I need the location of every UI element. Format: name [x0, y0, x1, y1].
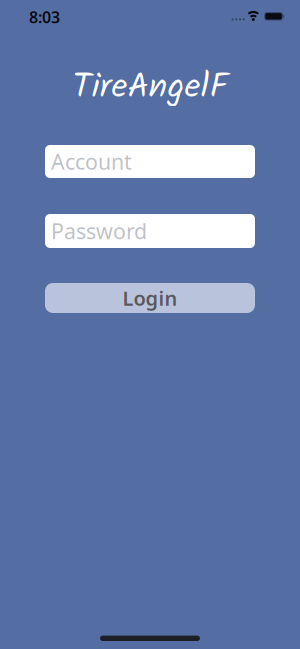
staticText: Login	[122, 285, 177, 311]
staticText: 8:03	[29, 6, 60, 28]
staticText: Account	[51, 147, 132, 176]
button[interactable]: Login	[45, 283, 255, 313]
staticText: TireAngelF	[72, 60, 227, 116]
button[interactable]: Account	[45, 145, 255, 178]
button[interactable]: Password	[45, 214, 255, 248]
staticText: Password	[51, 217, 147, 245]
